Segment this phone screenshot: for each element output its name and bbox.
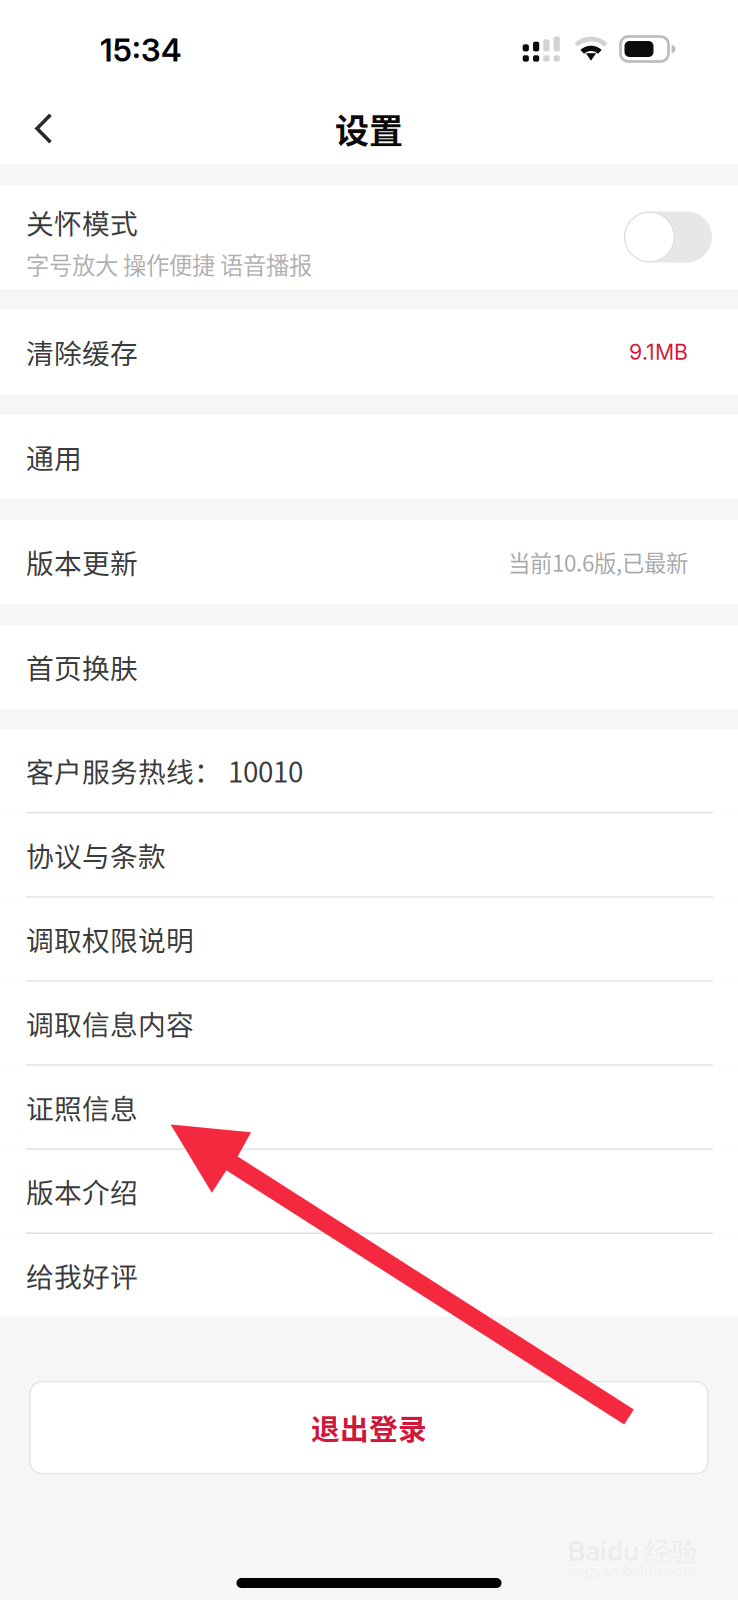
staticText: 给我好评 — [26, 1255, 138, 1295]
staticText: 调取权限说明 — [26, 919, 194, 959]
staticText: 调取信息内容 — [26, 1003, 194, 1043]
staticText: 15:34 — [100, 31, 182, 69]
staticText: 设置 — [335, 104, 403, 153]
staticText: 通用 — [26, 437, 82, 477]
staticText: 字号放大 操作便捷 语音播报 — [26, 247, 312, 281]
staticText: Baidu 经验 — [568, 1535, 699, 1569]
button[interactable]: 协议与条款 — [0, 814, 738, 896]
button[interactable]: 关怀模式 — [0, 185, 738, 289]
button[interactable]: 调取权限说明 — [0, 898, 738, 980]
button[interactable]: 清除缓存 — [0, 310, 738, 394]
staticText: 关怀模式 — [26, 202, 138, 242]
staticText: 退出登录 — [311, 1407, 427, 1448]
button[interactable]: 给我好评 — [0, 1234, 738, 1317]
button[interactable]: 通用 — [0, 415, 738, 499]
staticText: 版本更新 — [26, 542, 138, 582]
button[interactable]: 退出登录 — [30, 1382, 708, 1474]
staticText: 协议与条款 — [26, 835, 166, 875]
staticText: 客户服务热线： 10010 — [26, 750, 303, 791]
button[interactable]: 版本更新 — [0, 520, 738, 604]
staticText: 当前10.6版,已最新 — [508, 546, 688, 578]
staticText: 版本介绍 — [26, 1171, 138, 1211]
staticText: 清除缓存 — [26, 332, 138, 372]
button[interactable]: 调取信息内容 — [0, 982, 738, 1064]
button[interactable]: 首页换肤 — [0, 625, 738, 709]
button[interactable]: Back — [0, 97, 76, 160]
button[interactable]: 证照信息 — [0, 1066, 738, 1148]
staticText: 首页换肤 — [26, 647, 138, 687]
staticText: 9.1MB — [629, 339, 688, 365]
button[interactable]: 版本介绍 — [0, 1150, 738, 1232]
staticText: 证照信息 — [26, 1087, 138, 1127]
button[interactable]: 客户服务热线： 10010 — [0, 729, 738, 812]
